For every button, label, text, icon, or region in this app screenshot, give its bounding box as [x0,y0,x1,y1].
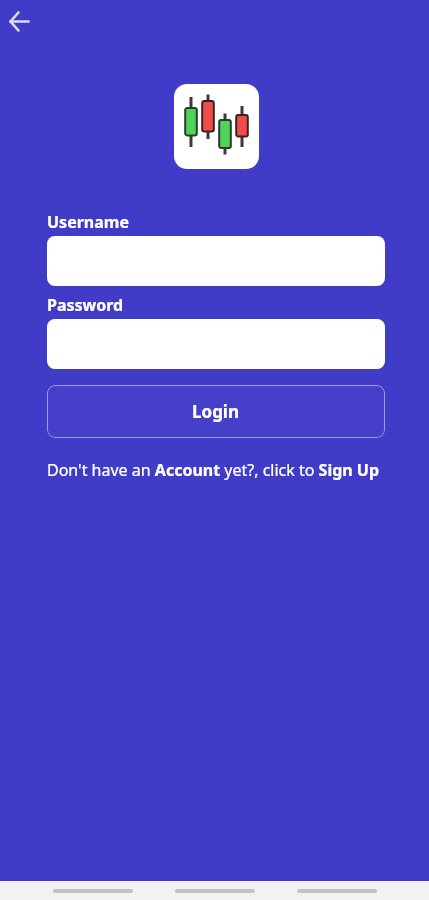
button[interactable] [53,889,133,893]
staticText: Password [47,294,124,316]
button[interactable]: Login [47,385,385,438]
button[interactable] [297,889,377,893]
staticText: Login [192,400,240,423]
button[interactable] [47,319,385,369]
button[interactable] [1,3,37,39]
staticText: Username [47,211,129,233]
button[interactable] [175,889,255,893]
button[interactable]: Don't have an Account yet?, click to Sig… [47,459,380,481]
button[interactable] [47,236,385,286]
